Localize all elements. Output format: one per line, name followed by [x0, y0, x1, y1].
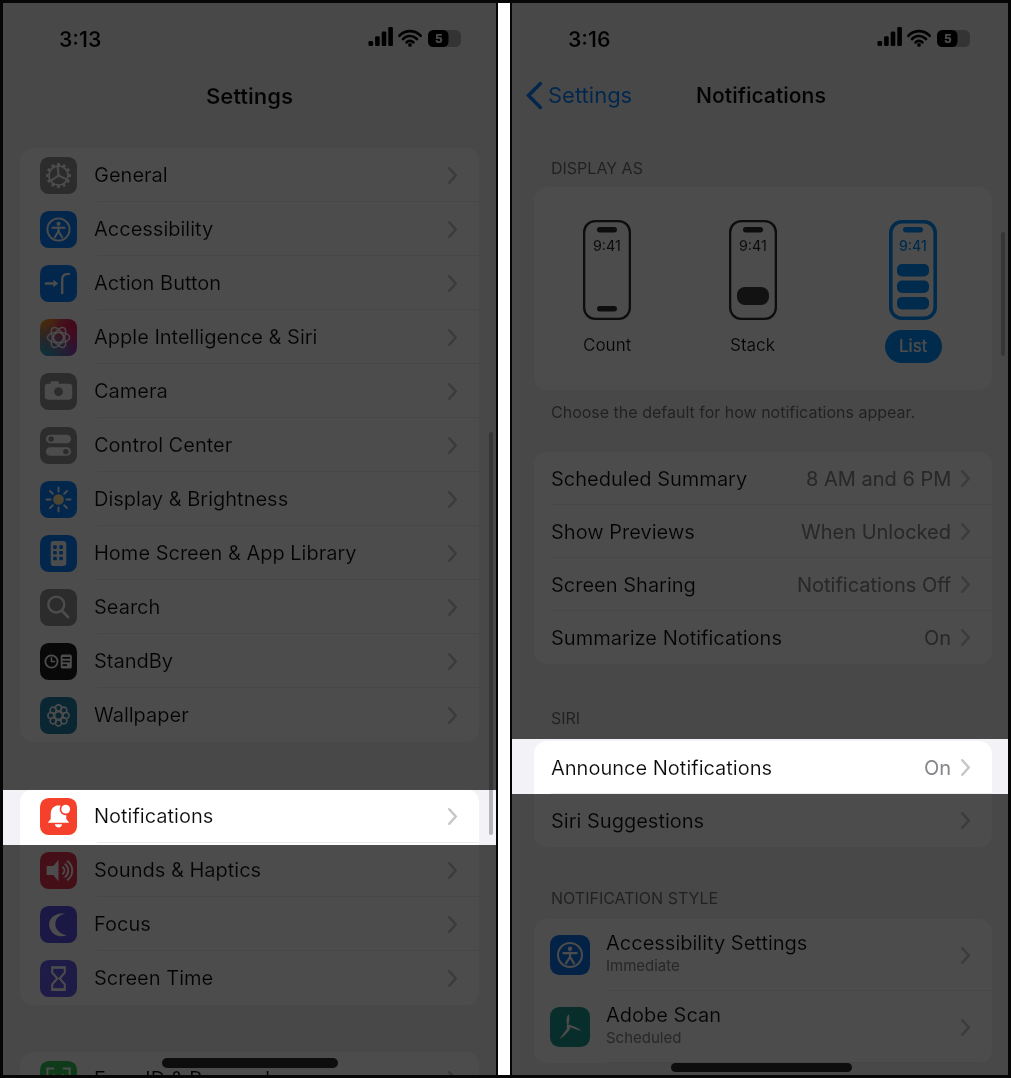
button[interactable]: Focus	[20, 897, 479, 951]
button[interactable]: Settings	[524, 78, 636, 113]
staticText: Apple Intelligence & Siri	[94, 325, 318, 349]
staticText: Scheduled	[606, 1028, 682, 1046]
staticText: 5	[435, 31, 443, 46]
staticText: Adobe Scan	[606, 1003, 722, 1027]
staticText: Accessibility	[94, 217, 214, 241]
staticText: Notifications	[94, 804, 214, 828]
button[interactable]: Notifications	[20, 789, 479, 843]
staticText: Choose the default for how notifications…	[551, 402, 916, 421]
staticText: On	[924, 626, 952, 650]
staticText: 9:41	[899, 237, 927, 254]
staticText: Wallpaper	[94, 703, 189, 727]
button[interactable]: List	[889, 220, 937, 320]
staticText: Sounds & Haptics	[94, 858, 262, 882]
staticText: DISPLAY AS	[551, 158, 643, 177]
staticText: Notifications Off	[797, 573, 952, 597]
staticText: Announce Notifications	[551, 756, 773, 780]
staticText: SIRI	[551, 708, 581, 727]
staticText: Count	[583, 335, 632, 356]
button[interactable]: Siri Suggestions	[534, 794, 992, 847]
button[interactable]: Home Screen & App Library	[20, 526, 479, 580]
staticText: Home Screen & App Library	[94, 541, 357, 565]
staticText: Search	[94, 595, 161, 619]
button[interactable]: Summarize Notifications	[534, 611, 992, 664]
staticText: Camera	[94, 379, 168, 403]
staticText: Focus	[94, 912, 151, 936]
button[interactable]: General	[20, 148, 479, 202]
staticText: General	[94, 163, 168, 187]
button[interactable]: Camera	[20, 364, 479, 418]
button[interactable]: Screen Sharing	[534, 558, 992, 611]
staticText: Stack	[730, 335, 776, 356]
staticText: Control Center	[94, 433, 233, 457]
button[interactable]: Apple Intelligence & Siri	[20, 310, 479, 364]
staticText: Screen Time	[94, 966, 214, 990]
staticText: 9:41	[739, 237, 767, 254]
button[interactable]: Scheduled Summary	[534, 452, 992, 505]
staticText: Settings	[3, 83, 496, 110]
staticText: Screen Sharing	[551, 573, 696, 597]
button[interactable]: Adobe Scan	[534, 991, 992, 1063]
button[interactable]: Display & Brightness	[20, 472, 479, 526]
button[interactable]: Show Previews	[534, 505, 992, 558]
staticText: Summarize Notifications	[551, 626, 782, 650]
staticText: 9:41	[593, 237, 621, 254]
staticText: Notifications	[696, 83, 826, 108]
staticText: Action Button	[94, 271, 222, 295]
button[interactable]: List	[885, 330, 942, 363]
staticText: Siri Suggestions	[551, 809, 705, 833]
button[interactable]: Action Button	[20, 256, 479, 310]
button[interactable]: Wallpaper	[20, 688, 479, 742]
button[interactable]: Accessibility Settings	[534, 919, 992, 991]
staticText: Settings	[548, 82, 633, 109]
staticText: Display & Brightness	[94, 487, 289, 511]
staticText: StandBy	[94, 649, 174, 673]
button[interactable]: Stack	[729, 220, 777, 320]
button[interactable]: Accessibility	[20, 202, 479, 256]
button[interactable]: StandBy	[20, 634, 479, 688]
staticText: 3:13	[59, 27, 102, 52]
staticText: 8 AM and 6 PM	[806, 467, 952, 491]
staticText: Scheduled Summary	[551, 467, 748, 491]
button[interactable]: Face ID & Passcode	[20, 1052, 479, 1078]
staticText: List	[899, 336, 928, 357]
button[interactable]: Control Center	[20, 418, 479, 472]
staticText: Accessibility Settings	[606, 931, 808, 955]
staticText: On	[924, 756, 952, 780]
staticText: 5	[944, 31, 952, 46]
staticText: 3:16	[568, 27, 611, 52]
button[interactable]: Count	[583, 220, 631, 320]
button[interactable]: Screen Time	[20, 951, 479, 1005]
staticText: NOTIFICATION STYLE	[551, 888, 719, 907]
button[interactable]: Announce Notifications	[534, 741, 992, 794]
button[interactable]: Search	[20, 580, 479, 634]
staticText: Show Previews	[551, 520, 695, 544]
button[interactable]: Sounds & Haptics	[20, 843, 479, 897]
staticText: Immediate	[606, 956, 680, 974]
staticText: When Unlocked	[801, 520, 952, 544]
staticText: Face ID & Passcode	[94, 1067, 282, 1078]
